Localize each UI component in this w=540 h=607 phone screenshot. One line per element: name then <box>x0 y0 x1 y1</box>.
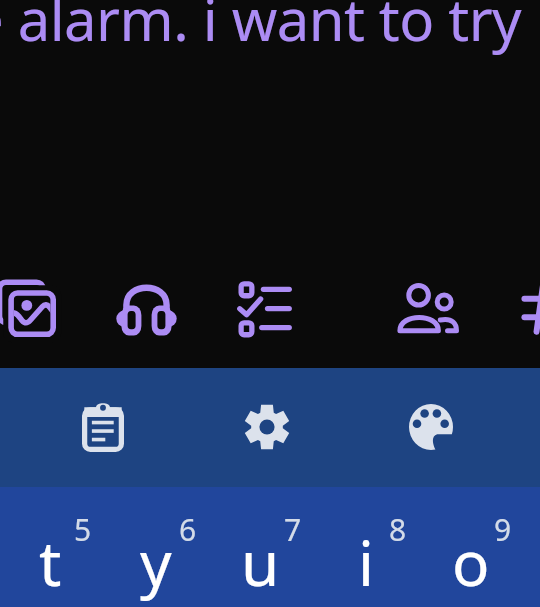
staticText: 8 <box>389 509 407 550</box>
button[interactable]: 7 <box>208 487 313 607</box>
staticText: o <box>452 520 490 604</box>
staticText: e alarm. i want to try <box>0 0 522 58</box>
staticText: 7 <box>284 509 302 550</box>
staticText: 9 <box>494 509 512 550</box>
button[interactable]: Settings <box>244 403 290 451</box>
button[interactable]: Gallery <box>0 277 57 338</box>
staticText: t <box>39 520 62 604</box>
staticText: 6 <box>179 509 197 550</box>
button[interactable]: Contacts <box>396 281 460 333</box>
staticText: 5 <box>74 509 92 550</box>
button[interactable]: Clipboard <box>82 402 124 452</box>
button[interactable]: 5 <box>0 487 103 607</box>
button[interactable]: 6 <box>103 487 208 607</box>
button[interactable]: Tags <box>520 281 540 335</box>
button[interactable]: Audio <box>116 281 177 335</box>
button[interactable]: 8 <box>313 487 418 607</box>
button[interactable]: 9 <box>418 487 523 607</box>
staticText: u <box>241 520 280 604</box>
staticText: y <box>140 520 172 604</box>
button[interactable]: Theme <box>409 404 453 450</box>
staticText: i <box>358 520 374 604</box>
button[interactable]: Tasks <box>237 281 292 335</box>
